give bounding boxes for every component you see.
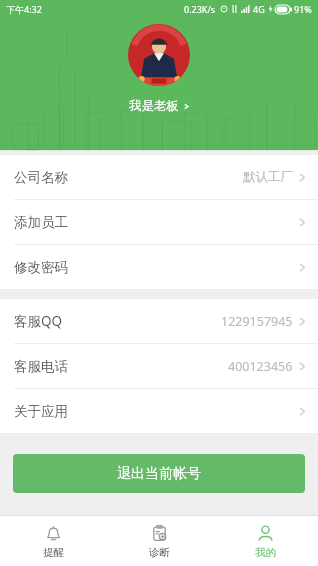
- button[interactable]: 添加员工: [0, 200, 318, 244]
- staticText: 退出当前帐号: [117, 465, 201, 483]
- staticText: 400123456: [228, 358, 293, 375]
- staticText: 关于应用: [14, 403, 68, 420]
- staticText: 下午4:32: [6, 3, 42, 15]
- button[interactable]: 公司名称: [0, 155, 318, 199]
- staticText: 91%: [294, 3, 312, 15]
- staticText: 诊断: [149, 546, 170, 559]
- button[interactable]: 退出当前帐号: [13, 454, 305, 493]
- staticText: 我的: [255, 546, 276, 559]
- staticText: 1229157945: [221, 313, 293, 330]
- staticText: 客服QQ: [14, 312, 63, 330]
- staticText: 公司名称: [14, 169, 68, 186]
- staticText: 客服电话: [14, 358, 68, 375]
- button[interactable]: 我的: [212, 516, 318, 566]
- staticText: 提醒: [43, 546, 64, 559]
- staticText: 默认工厂: [243, 169, 293, 185]
- button[interactable]: 提醒: [0, 516, 106, 566]
- button[interactable]: 我是老板: [121, 95, 198, 117]
- button[interactable]: 关于应用: [0, 389, 318, 433]
- button[interactable]: 客服电话: [0, 344, 318, 388]
- button[interactable]: 客服QQ: [0, 299, 318, 343]
- staticText: 添加员工: [14, 214, 68, 231]
- staticText: 0.23K/s: [184, 3, 216, 15]
- staticText: 4G: [253, 3, 265, 15]
- button[interactable]: 诊断: [106, 516, 212, 566]
- staticText: 我是老板: [129, 98, 179, 114]
- button[interactable]: 修改密码: [0, 245, 318, 289]
- button[interactable]: Profile photo: [128, 24, 190, 86]
- staticText: 修改密码: [14, 259, 68, 276]
